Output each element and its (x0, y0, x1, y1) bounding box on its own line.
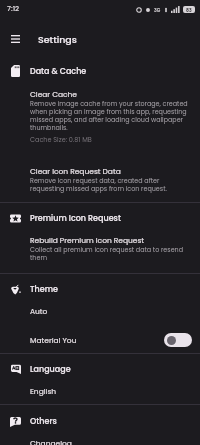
staticText: Material You (30, 335, 77, 345)
staticText: Changelog (30, 438, 72, 445)
staticText: Others (30, 416, 57, 427)
button[interactable] (0, 233, 200, 270)
staticText: Settings (38, 33, 77, 46)
button[interactable] (0, 88, 200, 150)
staticText: English (30, 386, 57, 396)
staticText: Collect all premium icon request data to… (30, 246, 191, 262)
staticText: Clear Cache (30, 89, 78, 99)
staticText: Data & Cache (30, 66, 87, 77)
staticText: Language (30, 364, 71, 375)
staticText: Clear Icon Request Data (30, 166, 121, 176)
staticText: Auto (30, 306, 48, 316)
button[interactable] (0, 434, 200, 445)
button[interactable] (0, 302, 200, 322)
staticText: Theme (30, 284, 58, 295)
staticText: Rebuild Premium Icon Request (30, 235, 145, 245)
staticText: Cache Size: 0.81 MB (30, 135, 92, 144)
button[interactable] (0, 328, 200, 352)
button[interactable]: Open navigation menu (2, 26, 28, 52)
button[interactable] (0, 382, 200, 402)
staticText: 7:12 (7, 4, 20, 14)
staticText: 83 (186, 7, 192, 13)
button[interactable] (0, 164, 200, 200)
staticText: Remove icon request data, created after … (30, 177, 191, 193)
staticText: 3G (154, 7, 161, 13)
staticText: Remove image cache from your storage, cr… (30, 100, 191, 132)
staticText: Premium Icon Request (30, 213, 121, 224)
